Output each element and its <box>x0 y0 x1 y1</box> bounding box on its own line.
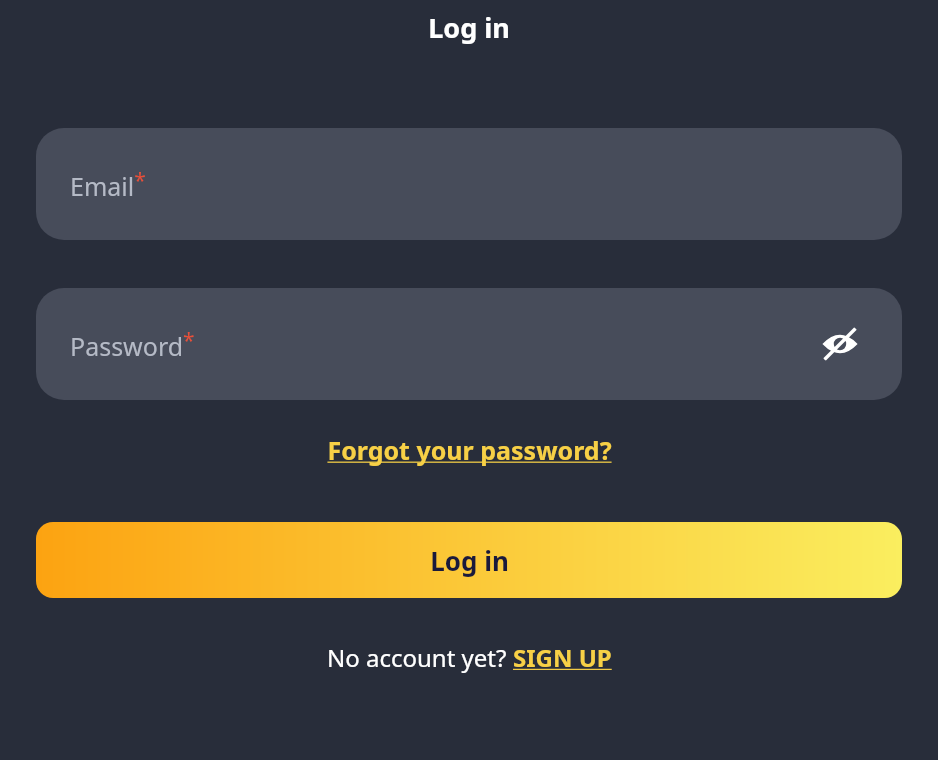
button[interactable]: Forgot your password? <box>321 429 618 471</box>
staticText: Forgot your password? <box>327 433 612 467</box>
button[interactable]: SIGN UP <box>513 641 612 674</box>
staticText: Password* <box>70 326 195 363</box>
button[interactable]: Email* <box>36 128 902 240</box>
staticText: Log in <box>430 543 509 578</box>
staticText: Log in <box>428 9 510 46</box>
staticText: Email* <box>70 166 146 203</box>
button[interactable]: Show password <box>818 322 862 366</box>
button[interactable]: Password* <box>36 288 902 400</box>
button[interactable]: Log in <box>36 522 902 598</box>
staticText: No account yet? <box>327 641 513 674</box>
staticText: SIGN UP <box>513 641 612 674</box>
